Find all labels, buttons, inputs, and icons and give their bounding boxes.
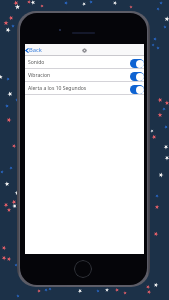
button[interactable]: Sonido	[25, 56, 144, 68]
staticText: Back	[29, 46, 42, 54]
button[interactable]: Back	[25, 45, 45, 55]
button[interactable]: Settings	[80, 46, 88, 54]
button[interactable]: Alerta a los 10 Segundos	[25, 82, 144, 94]
staticText: Vibracion	[28, 72, 51, 79]
staticText: Sonido	[28, 59, 45, 66]
staticText: Alerta a los 10 Segundos	[28, 85, 87, 92]
button[interactable]: Vibracion	[25, 69, 144, 81]
button[interactable]: Home	[74, 260, 92, 278]
